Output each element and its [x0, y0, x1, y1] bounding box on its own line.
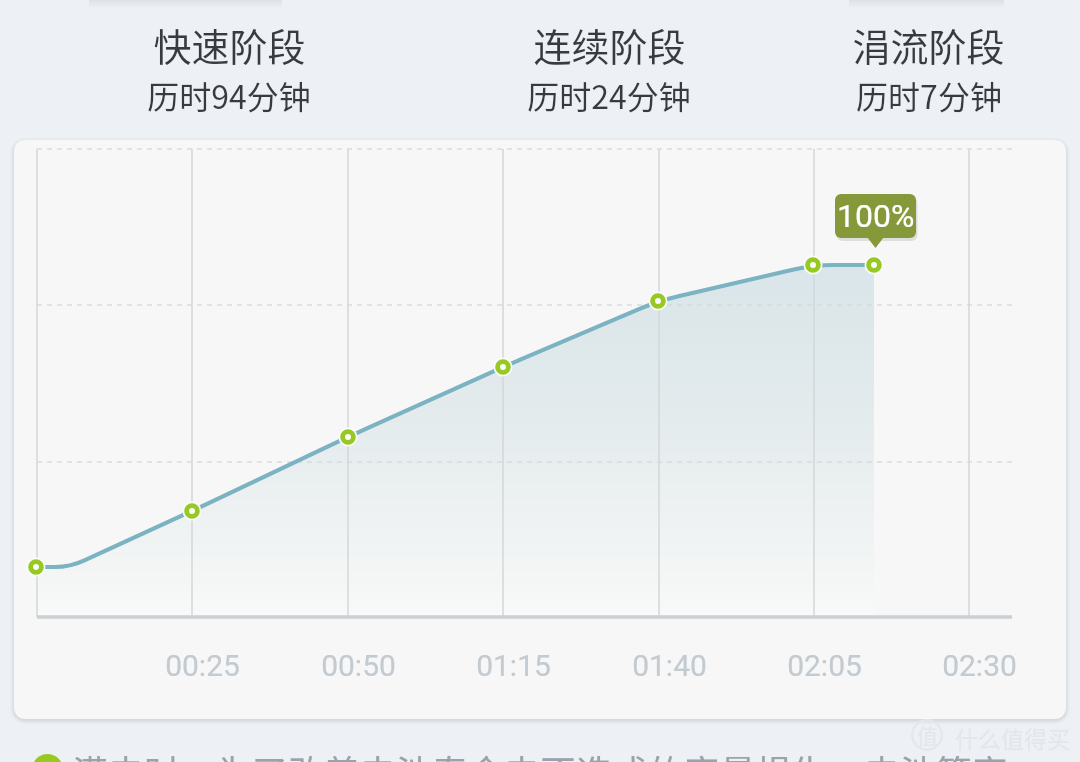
staticText: 涓流阶段	[852, 17, 1005, 72]
staticText: 00:50	[321, 648, 396, 683]
staticText: 连续阶段	[533, 17, 686, 72]
staticText: 01:40	[632, 648, 707, 683]
staticText: 02:05	[787, 648, 862, 683]
button[interactable]: 连续阶段	[469, 17, 749, 117]
staticText: 满电时，为了改善电池寿命电不造成的容量损失，电池算家	[72, 745, 1009, 762]
staticText: 历时94分钟	[147, 72, 311, 117]
staticText: 100%	[837, 197, 915, 235]
button[interactable]: Fast charge stage tab	[89, 0, 282, 8]
staticText: 什么值得买	[955, 721, 1070, 754]
staticText: 01:15	[476, 648, 551, 683]
button[interactable]: Trickle charge stage tab	[849, 0, 1004, 8]
button[interactable]: Charging curve chart	[14, 140, 1066, 719]
staticText: 值	[917, 720, 938, 750]
staticText: 历时7分钟	[856, 72, 1002, 117]
staticText: 02:30	[942, 648, 1017, 683]
staticText: 00:25	[165, 648, 240, 683]
button[interactable]: 涓流阶段	[788, 17, 1068, 117]
button[interactable]: 快速阶段	[89, 17, 369, 117]
staticText: 历时24分钟	[527, 72, 691, 117]
staticText: 快速阶段	[153, 17, 306, 72]
